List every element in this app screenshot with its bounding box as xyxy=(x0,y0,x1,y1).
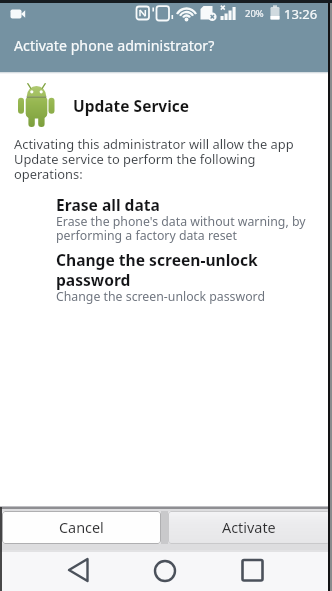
staticText: 20% xyxy=(245,7,264,20)
staticText: Change the screen-unlock password xyxy=(56,288,266,305)
button[interactable]: Cancel xyxy=(2,511,161,544)
staticText: 13:26 xyxy=(284,5,318,23)
staticText: Activate xyxy=(222,518,276,538)
staticText: Change the screen-unlock password xyxy=(56,249,258,290)
staticText: Update Service xyxy=(73,95,190,116)
staticText: Cancel xyxy=(59,518,104,538)
button[interactable] xyxy=(145,550,185,591)
button[interactable] xyxy=(232,550,272,591)
staticText: Erase all data xyxy=(56,194,160,215)
staticText: Erase the phone's data without warning, … xyxy=(56,213,306,244)
button[interactable]: Activate xyxy=(168,511,330,544)
button[interactable] xyxy=(58,550,98,591)
staticText: Activate phone administrator? xyxy=(14,36,215,55)
staticText: Activating this administrator will allow… xyxy=(14,135,294,183)
